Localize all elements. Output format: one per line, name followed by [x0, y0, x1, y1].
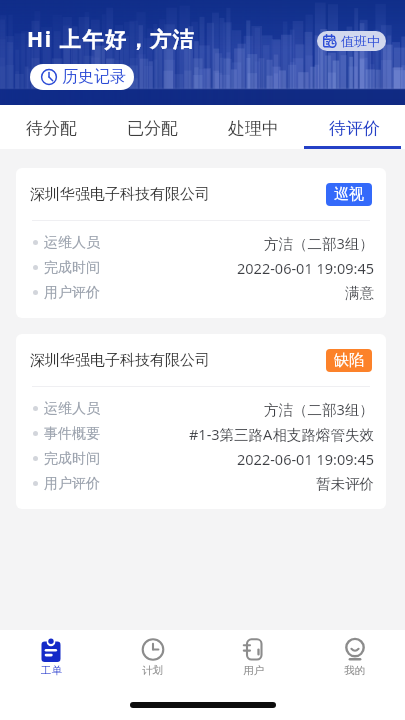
button[interactable]: 深圳华强电子科技有限公司 — [16, 334, 386, 509]
button[interactable]: Plans — [102, 630, 203, 684]
button[interactable]: Users — [203, 630, 304, 684]
staticText: 值班中 — [341, 33, 380, 49]
staticText: 用户评价 — [44, 284, 100, 302]
staticText: 工单 — [41, 664, 62, 677]
staticText: #1-3第三路A相支路熔管失效 — [189, 424, 374, 444]
staticText: 事件概要 — [44, 425, 100, 443]
staticText: 我的 — [344, 664, 365, 677]
staticText: 暂未评价 — [316, 475, 374, 493]
staticText: 满意 — [345, 284, 374, 302]
staticText: 运维人员 — [44, 234, 100, 252]
staticText: 用户评价 — [44, 475, 100, 493]
button[interactable]: 值班中 — [317, 31, 386, 51]
staticText: 完成时间 — [44, 450, 100, 468]
staticText: 历史记录 — [62, 67, 126, 87]
button[interactable]: 巡视 — [326, 183, 372, 206]
staticText: 巡视 — [334, 185, 364, 204]
button[interactable]: Work orders — [0, 630, 102, 684]
button[interactable]: 待评价 — [304, 105, 405, 149]
staticText: 方洁（二部3组） — [264, 399, 374, 419]
staticText: 计划 — [142, 664, 163, 677]
staticText: 处理中 — [228, 118, 279, 139]
staticText: 深圳华强电子科技有限公司 — [30, 185, 210, 204]
staticText: 深圳华强电子科技有限公司 — [30, 351, 210, 370]
button[interactable]: 待分配 — [0, 105, 102, 149]
staticText: 待评价 — [329, 118, 380, 139]
button[interactable]: 深圳华强电子科技有限公司 — [16, 168, 386, 318]
staticText: 2022-06-01 19:09:45 — [237, 258, 374, 278]
staticText: 运维人员 — [44, 400, 100, 418]
button[interactable]: Profile — [304, 630, 405, 684]
staticText: 2022-06-01 19:09:45 — [237, 449, 374, 469]
staticText: 用户 — [243, 664, 264, 677]
button[interactable]: 缺陷 — [326, 349, 372, 372]
button[interactable]: 已分配 — [102, 105, 203, 149]
staticText: 方洁（二部3组） — [264, 233, 374, 253]
button[interactable]: 处理中 — [203, 105, 304, 149]
button[interactable]: 历史记录 — [30, 64, 134, 90]
staticText: 待分配 — [26, 118, 77, 139]
staticText: 完成时间 — [44, 259, 100, 277]
staticText: 缺陷 — [334, 351, 364, 370]
staticText: 已分配 — [127, 118, 178, 139]
staticText: Hi 上午好，方洁 — [27, 25, 196, 54]
